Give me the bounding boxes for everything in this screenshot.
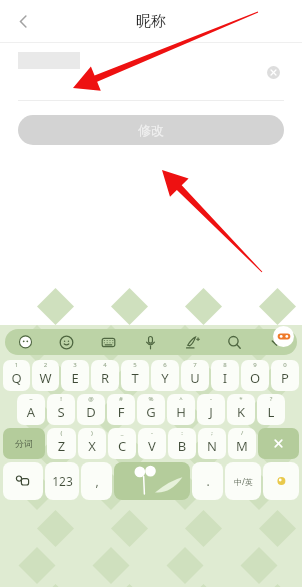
button[interactable]: ; (198, 428, 226, 459)
staticText: - (197, 395, 225, 403)
button[interactable]: 4 (91, 360, 119, 391)
staticText: 9 (241, 361, 269, 369)
staticText: 5 (121, 361, 149, 369)
button[interactable]: Stickers (3, 462, 43, 500)
button[interactable]: @ (77, 394, 105, 425)
button[interactable]: % (137, 394, 165, 425)
button[interactable]: Emoji (46, 329, 87, 355)
staticText: X (78, 437, 106, 455)
button[interactable]: Handwriting (171, 329, 213, 355)
staticText: T (121, 369, 149, 387)
button[interactable]: ! (47, 394, 75, 425)
staticText: U (181, 369, 209, 387)
staticText: ! (47, 395, 75, 403)
staticText: 6 (151, 361, 179, 369)
button[interactable]: Back (3, 1, 43, 41)
staticText: S (47, 403, 75, 421)
staticText: # (107, 395, 135, 403)
button[interactable]: : (168, 428, 196, 459)
button[interactable]: Theme sticker (273, 326, 294, 347)
staticText: N (198, 437, 226, 455)
staticText: G (137, 403, 165, 421)
button[interactable]: 1 (3, 360, 30, 391)
staticText: ( (47, 429, 76, 437)
staticText: B (168, 437, 196, 455)
staticText: 分词 (15, 438, 33, 449)
button[interactable]: - (197, 394, 225, 425)
staticText: V (138, 437, 166, 455)
staticText: Y (151, 369, 179, 387)
button[interactable]: ~ (17, 394, 45, 425)
staticText: 4 (91, 361, 119, 369)
staticText: 昵称 (136, 12, 166, 31)
staticText: H (167, 403, 195, 421)
button[interactable]: More options (255, 329, 297, 355)
button[interactable]: _ (108, 428, 136, 459)
staticText: , (95, 473, 99, 489)
staticText: E (61, 369, 89, 387)
button[interactable]: Enter (263, 462, 299, 500)
button[interactable]: * (227, 394, 255, 425)
staticText: K (227, 403, 255, 421)
staticText: * (227, 395, 255, 403)
button[interactable]: Keyboard layout (87, 329, 129, 355)
staticText: C (108, 437, 136, 455)
staticText: ; (198, 429, 226, 437)
staticText: 中/英 (234, 476, 253, 487)
button[interactable]: 2 (32, 360, 59, 391)
button[interactable]: 5 (121, 360, 149, 391)
button[interactable]: ) (78, 428, 106, 459)
button[interactable]: ? (257, 394, 285, 425)
staticText: ^ (167, 395, 195, 403)
staticText: F (107, 403, 135, 421)
staticText: _ (108, 429, 136, 437)
button[interactable]: . (192, 462, 223, 500)
button[interactable]: , (81, 462, 112, 500)
button[interactable]: Microphone (129, 329, 171, 355)
button[interactable]: 7 (181, 360, 209, 391)
button[interactable]: / (228, 428, 256, 459)
staticText: Q (3, 369, 30, 387)
staticText: ~ (17, 395, 45, 403)
staticText: M (228, 437, 256, 455)
button[interactable]: Space (114, 462, 190, 500)
button[interactable]: ( (47, 428, 76, 459)
staticText: / (228, 429, 256, 437)
staticText: Z (47, 437, 76, 455)
button[interactable]: Backspace (258, 428, 299, 459)
button[interactable]: 中/英 (225, 462, 261, 500)
staticText: : (168, 429, 196, 437)
button[interactable]: ^ (167, 394, 195, 425)
button[interactable]: 9 (241, 360, 269, 391)
button[interactable]: 8 (211, 360, 239, 391)
staticText: 2 (32, 361, 59, 369)
staticText: O (241, 369, 269, 387)
staticText: 123 (52, 473, 73, 489)
button[interactable]: 修改 (18, 115, 284, 145)
button[interactable]: - (138, 428, 166, 459)
staticText: A (17, 403, 45, 421)
button[interactable]: Clear text (260, 59, 286, 85)
staticText: J (197, 403, 225, 421)
staticText: 8 (211, 361, 239, 369)
button[interactable]: Voice assistant (5, 329, 46, 355)
staticText: 3 (61, 361, 89, 369)
button[interactable]: 分词 (3, 428, 45, 459)
staticText: . (206, 473, 210, 489)
staticText: D (77, 403, 105, 421)
button[interactable]: # (107, 394, 135, 425)
staticText: - (138, 429, 166, 437)
staticText: 1 (3, 361, 30, 369)
button[interactable]: Search (213, 329, 255, 355)
button[interactable]: 3 (61, 360, 89, 391)
staticText: R (91, 369, 119, 387)
button[interactable]: 123 (45, 462, 79, 500)
staticText: I (211, 369, 239, 387)
staticText: 0 (271, 361, 299, 369)
button[interactable]: 6 (151, 360, 179, 391)
staticText: P (271, 369, 299, 387)
staticText: W (32, 369, 59, 387)
staticText: ) (78, 429, 106, 437)
staticText: % (137, 395, 165, 403)
button[interactable]: 0 (271, 360, 299, 391)
